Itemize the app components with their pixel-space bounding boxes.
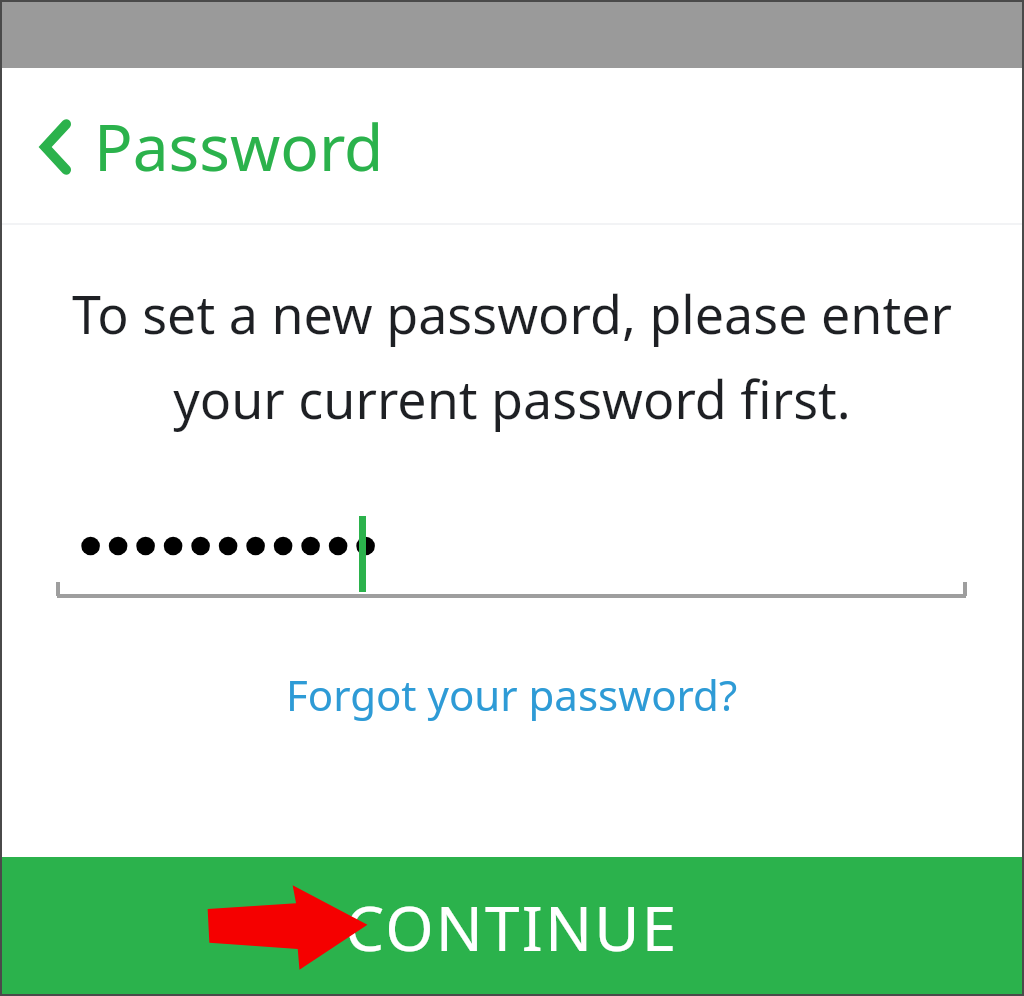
staticText: Password	[94, 103, 384, 190]
other: Back	[40, 121, 72, 173]
staticText: Forgot your password?	[286, 666, 738, 723]
button[interactable]: Forgot your password?	[266, 658, 758, 731]
button[interactable]: Back	[24, 93, 400, 200]
staticText: CONTINUE	[345, 885, 679, 969]
button[interactable]: Current password	[0, 505, 1024, 620]
staticText: To set a new password, please enter your…	[56, 278, 968, 435]
button[interactable]: CONTINUE	[0, 857, 1024, 996]
